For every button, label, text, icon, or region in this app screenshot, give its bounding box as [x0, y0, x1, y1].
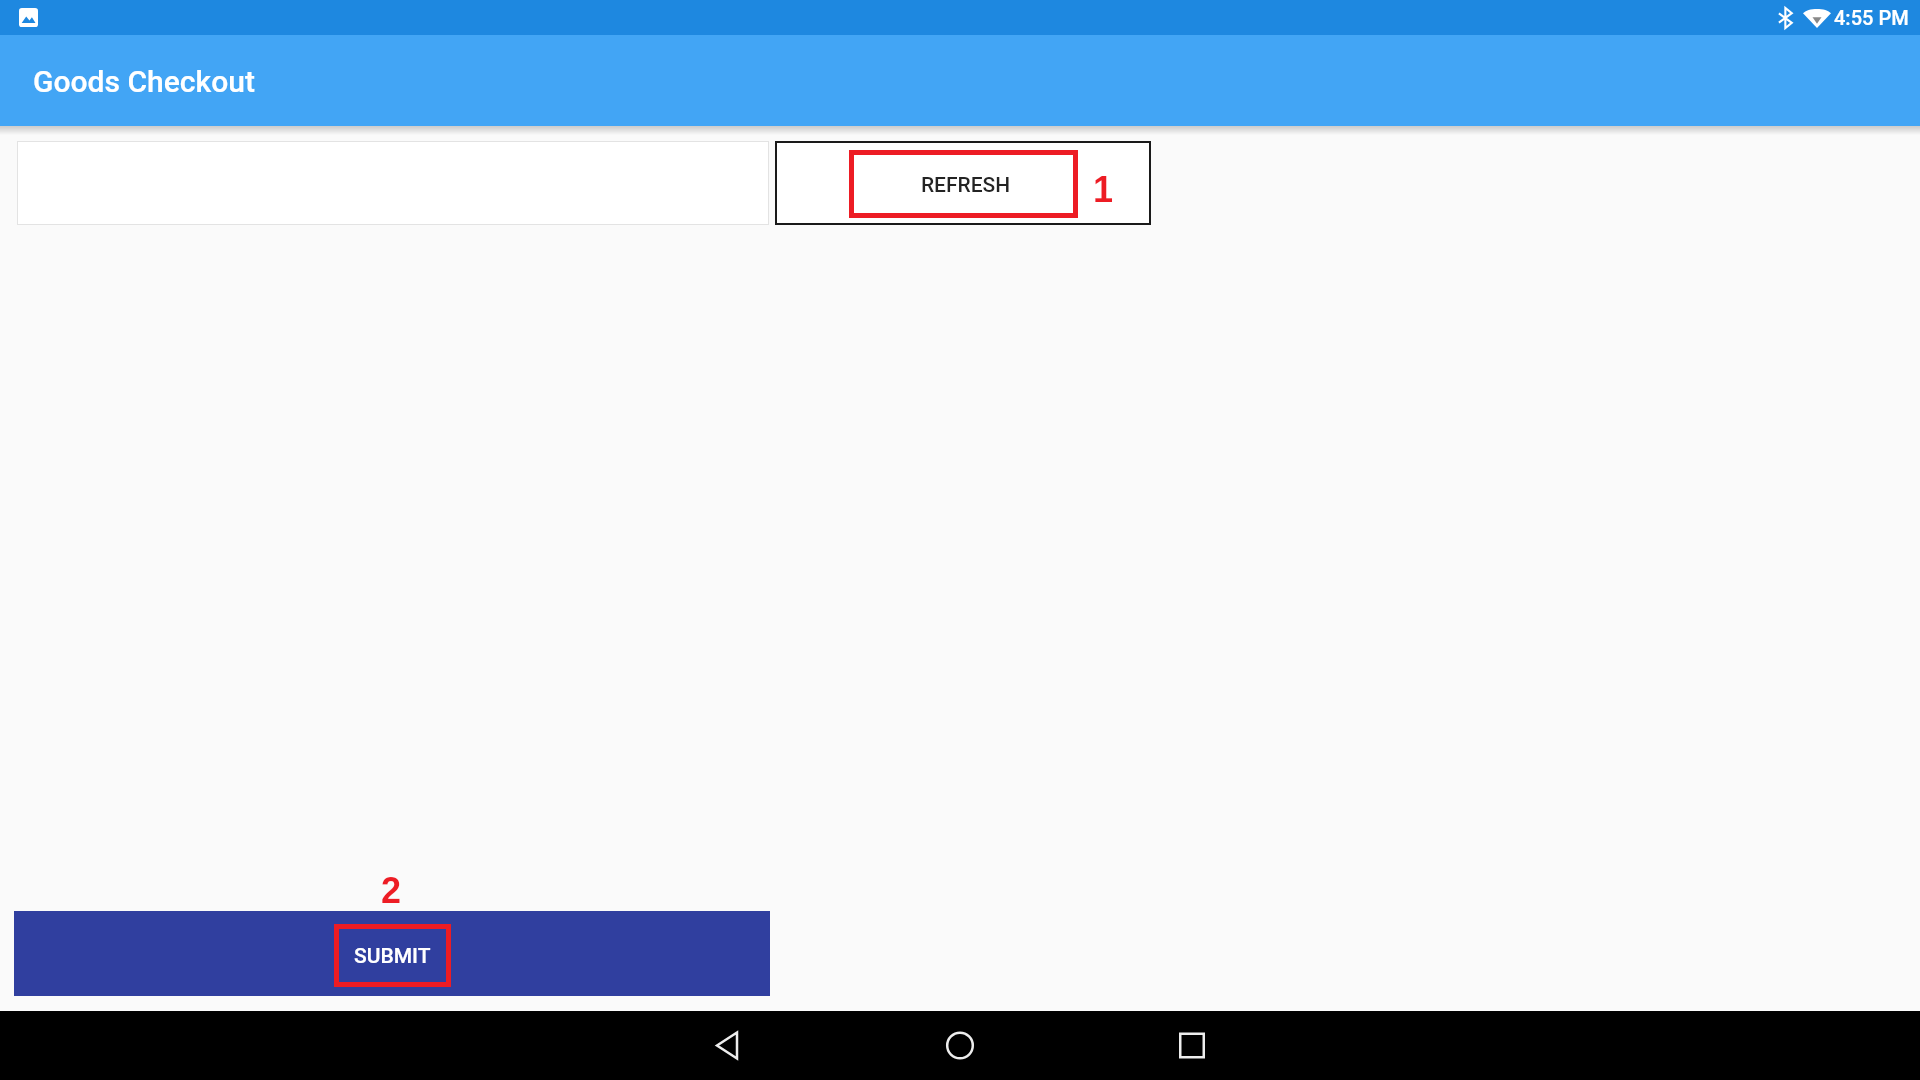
staticText: REFRESH [921, 173, 1011, 198]
button[interactable]: Home [925, 1011, 995, 1080]
staticText: SUBMIT [354, 944, 431, 969]
button[interactable]: REFRESH [849, 150, 1078, 218]
button[interactable]: Barcode input field [17, 141, 769, 225]
staticText: 1 [1093, 169, 1114, 209]
button[interactable]: SUBMIT [14, 911, 770, 996]
other: Screenshot notification [19, 8, 38, 27]
staticText: 2 [381, 870, 402, 910]
button[interactable]: Recents [1157, 1011, 1227, 1080]
staticText: 4:55 PM [1834, 6, 1909, 29]
staticText: Goods Checkout [33, 64, 255, 99]
button[interactable]: Back [692, 1011, 762, 1080]
